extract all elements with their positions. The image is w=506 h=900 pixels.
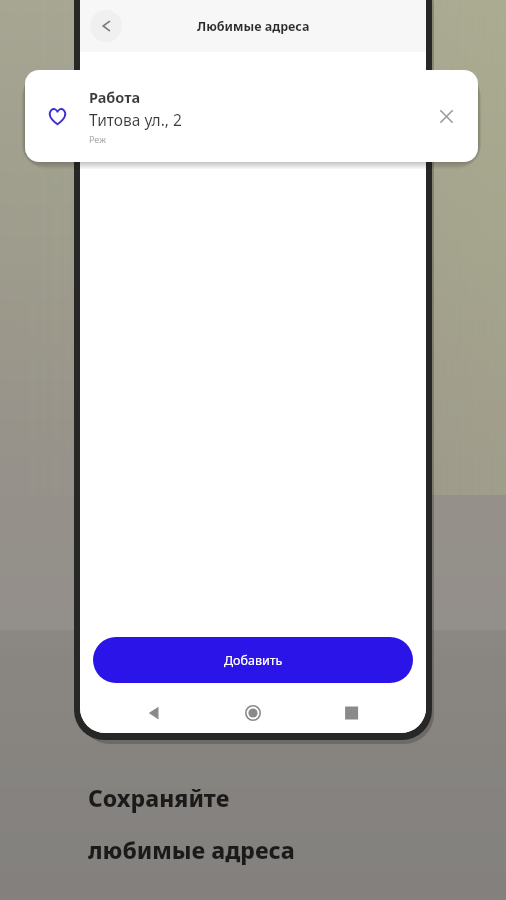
button[interactable]: Назад (90, 10, 122, 42)
staticText: Работа (89, 87, 141, 107)
staticText: Сохраняйте (88, 782, 230, 813)
button[interactable]: Работа (25, 70, 478, 162)
button[interactable]: Добавить (93, 637, 413, 683)
staticText: Титова ул., 2 (89, 109, 182, 130)
staticText: любимые адреса (88, 834, 295, 865)
staticText: Любимые адреса (197, 18, 310, 35)
staticText: Реж (89, 133, 106, 145)
button[interactable]: Удалить (414, 70, 478, 162)
staticText: Добавить (224, 652, 283, 669)
